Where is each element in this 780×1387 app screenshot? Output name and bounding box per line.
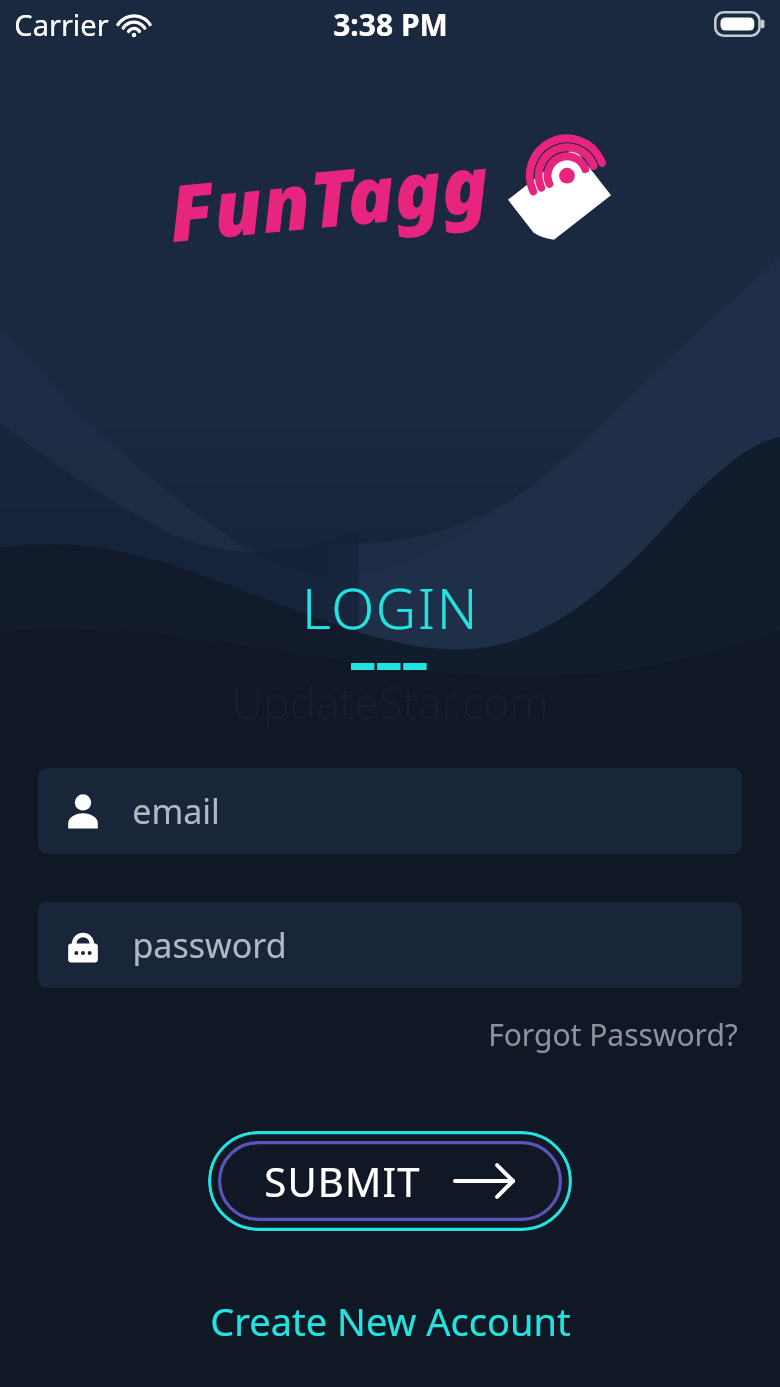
- staticText: Create New Account: [210, 1295, 571, 1347]
- staticText: SUBMIT: [264, 1154, 421, 1208]
- button[interactable]: Create New Account: [200, 1289, 581, 1353]
- staticText: FunTagg: [164, 129, 493, 265]
- button[interactable]: SUBMIT: [208, 1131, 572, 1231]
- button[interactable]: email: [38, 768, 742, 854]
- staticText: Carrier: [14, 5, 109, 44]
- staticText: password: [132, 922, 287, 968]
- staticText: Forgot Password?: [488, 1014, 738, 1055]
- staticText: 3:38 PM: [333, 4, 448, 45]
- other: FunTagg logo: [507, 145, 612, 250]
- button[interactable]: password: [38, 902, 742, 988]
- staticText: LOGIN: [302, 569, 479, 645]
- button[interactable]: Forgot Password?: [484, 1010, 742, 1059]
- staticText: email: [132, 788, 220, 834]
